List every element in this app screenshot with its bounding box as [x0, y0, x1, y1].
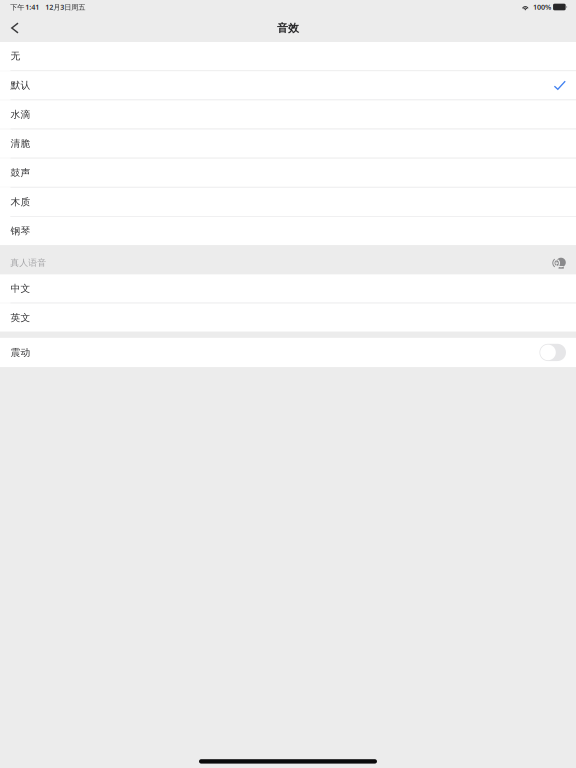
button[interactable]: 震动	[0, 338, 576, 367]
button[interactable]: 钢琴	[0, 217, 576, 245]
staticText: 真人语音	[10, 257, 46, 268]
button[interactable]: 无	[0, 42, 576, 70]
staticText: 100%	[533, 2, 551, 12]
staticText: 默认	[11, 79, 31, 91]
button[interactable]: 木质	[0, 188, 576, 216]
staticText: 钢琴	[11, 225, 31, 237]
button[interactable]: 水滴	[0, 100, 576, 128]
button[interactable]: 中文	[0, 274, 576, 303]
button[interactable]: 英文	[0, 304, 576, 332]
staticText: 震动	[11, 346, 31, 359]
button[interactable]: 返回	[0, 14, 28, 42]
button[interactable]: 鼓声	[0, 159, 576, 187]
staticText: 无	[11, 50, 21, 62]
staticText: 中文	[11, 282, 31, 295]
button[interactable]: 默认	[0, 71, 576, 99]
staticText: 英文	[11, 311, 31, 324]
staticText: 木质	[11, 196, 31, 208]
staticText: 下午 1:41 12月3日周五	[10, 2, 85, 12]
staticText: 清脆	[11, 137, 31, 150]
staticText: 水滴	[11, 108, 31, 121]
button[interactable]: 清脆	[0, 129, 576, 158]
staticText: 音效	[277, 21, 299, 35]
staticText: 鼓声	[11, 167, 31, 179]
